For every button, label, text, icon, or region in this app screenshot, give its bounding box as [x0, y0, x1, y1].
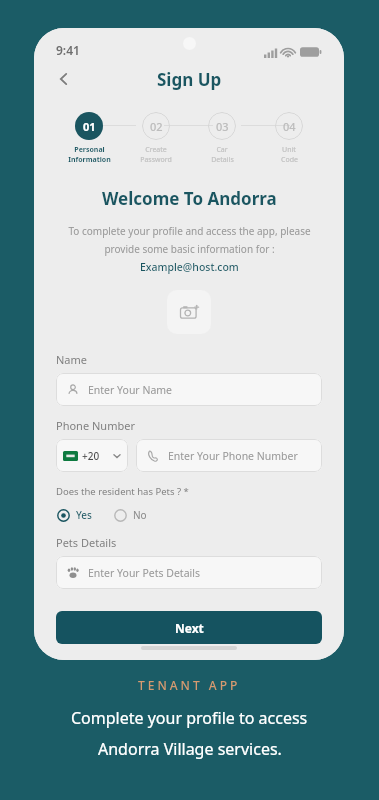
- staticText: provide some basic information for :: [104, 242, 275, 256]
- staticText: Information: [68, 155, 111, 165]
- button[interactable]: Enter Your Phone Number: [136, 439, 322, 472]
- staticText: 03: [216, 119, 229, 134]
- staticText: Enter Your Name: [88, 383, 173, 397]
- staticText: Name: [56, 352, 88, 367]
- staticText: 04: [283, 119, 296, 134]
- staticText: 02: [150, 119, 163, 134]
- button[interactable]: No: [113, 506, 148, 524]
- staticText: Enter Your Pets Details: [88, 566, 200, 580]
- staticText: Welcome To Andorra: [102, 187, 277, 210]
- staticText: Does the resident has Pets ? *: [56, 485, 189, 498]
- button[interactable]: Next: [56, 611, 322, 644]
- staticText: Personal: [74, 145, 105, 155]
- staticText: Password: [140, 155, 172, 165]
- button[interactable]: Enter Your Name: [56, 373, 322, 406]
- staticText: +20: [82, 449, 100, 463]
- staticText: No: [133, 508, 147, 522]
- staticText: Yes: [76, 508, 92, 522]
- staticText: Example@host.com: [140, 260, 239, 274]
- button[interactable]: Add photo: [167, 290, 211, 334]
- staticText: Phone Number: [56, 418, 135, 433]
- staticText: Complete your profile to access: [71, 707, 308, 729]
- staticText: Andorra Village services.: [98, 738, 282, 760]
- staticText: Next: [175, 620, 204, 636]
- staticText: Unit: [282, 145, 296, 155]
- button[interactable]: 03: [193, 112, 251, 165]
- staticText: Car: [216, 145, 228, 155]
- button[interactable]: +20: [56, 439, 128, 472]
- staticText: Details: [211, 155, 234, 165]
- staticText: Pets Details: [56, 535, 117, 550]
- button[interactable]: Yes: [56, 506, 93, 524]
- staticText: TENANT APP: [138, 677, 241, 693]
- button[interactable]: 01: [60, 112, 118, 165]
- staticText: Code: [281, 155, 298, 165]
- button[interactable]: 02: [127, 112, 185, 165]
- button[interactable]: Back: [48, 63, 80, 95]
- staticText: Create: [145, 145, 167, 155]
- staticText: 9:41: [56, 42, 80, 58]
- staticText: To complete your profile and access the …: [68, 224, 311, 238]
- button[interactable]: 04: [260, 112, 318, 165]
- button[interactable]: Enter Your Pets Details: [56, 556, 322, 589]
- staticText: Enter Your Phone Number: [168, 449, 298, 463]
- staticText: Sign Up: [157, 68, 222, 91]
- staticText: 01: [83, 119, 96, 134]
